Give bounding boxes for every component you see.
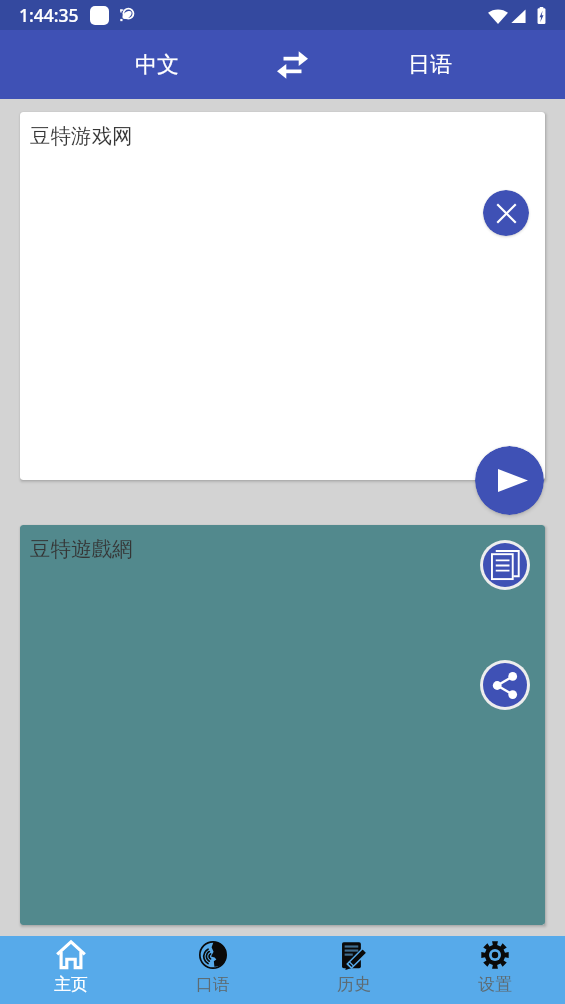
staticText: 豆特游戏网 xyxy=(30,123,133,149)
button[interactable]: 历史 xyxy=(283,936,424,1004)
button[interactable]: 日语 xyxy=(370,30,490,99)
staticText: 设置 xyxy=(478,974,512,995)
button[interactable]: 中文 xyxy=(97,30,217,99)
staticText: 口语 xyxy=(196,974,230,995)
button[interactable]: 口语 xyxy=(142,936,283,1004)
button[interactable]: 设置 xyxy=(424,936,565,1004)
button[interactable]: Clear text xyxy=(483,190,529,236)
staticText: 历史 xyxy=(337,974,371,995)
staticText: 中文 xyxy=(135,51,179,79)
staticText: 豆特遊戲網 xyxy=(30,536,133,562)
button[interactable]: 主页 xyxy=(0,936,142,1004)
staticText: 1:44:35 xyxy=(19,3,79,27)
button[interactable]: Copy translation xyxy=(480,540,530,590)
staticText: 日语 xyxy=(408,51,452,79)
button[interactable]: Share translation xyxy=(480,660,530,710)
staticText: 主页 xyxy=(54,974,88,995)
button[interactable]: Swap languages xyxy=(264,37,320,93)
button[interactable]: Play xyxy=(475,446,544,515)
